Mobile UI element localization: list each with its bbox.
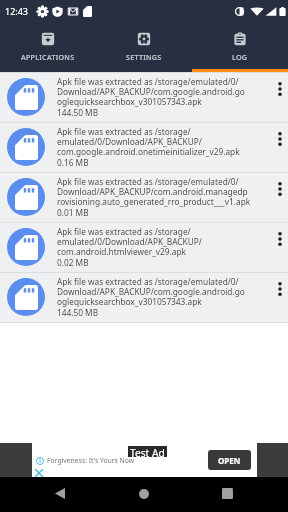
button[interactable]: Recents [209,477,245,512]
button[interactable]: OPEN [208,450,251,470]
button[interactable]: More options [272,122,288,172]
button[interactable]: SETTINGS [96,22,192,72]
staticText: Apk file was extracted as /storage/emula… [57,276,245,307]
staticText: Apk file was extracted as /storage/ emul… [57,226,202,257]
button[interactable]: Apk file was extracted as /storage/ emul… [0,122,288,172]
staticText: Test Ad [130,446,165,457]
staticText: OPEN [218,455,241,466]
staticText: LOG [232,52,248,62]
staticText: Apk file was extracted as /storage/emula… [57,76,245,107]
button[interactable]: More options [272,72,288,122]
button[interactable]: LOG [192,22,288,72]
staticText: 0.16 MB [57,157,89,168]
staticText: Apk file was extracted as /storage/emula… [57,176,251,207]
staticText: APPLICATIONS [21,52,75,62]
button[interactable]: Apk file was extracted as /storage/emula… [0,272,288,322]
staticText: 144.50 MB [57,307,99,318]
button[interactable]: More options [272,272,288,322]
button[interactable]: Apk file was extracted as /storage/ emul… [0,222,288,272]
button[interactable]: Apk file was extracted as /storage/emula… [0,72,288,122]
staticText: Forgiveness: It's Yours Now [47,456,135,465]
button[interactable]: Forgiveness: It's Yours Now [32,443,257,477]
staticText: 12:43 [5,5,29,17]
button[interactable]: Home [126,477,162,512]
staticText: 144.50 MB [57,107,99,118]
staticText: 0.02 MB [57,257,89,268]
staticText: SETTINGS [126,52,162,62]
button[interactable]: More options [272,172,288,222]
staticText: Apk file was extracted as /storage/ emul… [57,126,240,157]
button[interactable]: APPLICATIONS [0,22,96,72]
button[interactable]: Apk file was extracted as /storage/emula… [0,172,288,222]
button[interactable]: More options [272,222,288,272]
staticText: 0.01 MB [57,207,89,218]
button[interactable]: Back [42,477,78,512]
